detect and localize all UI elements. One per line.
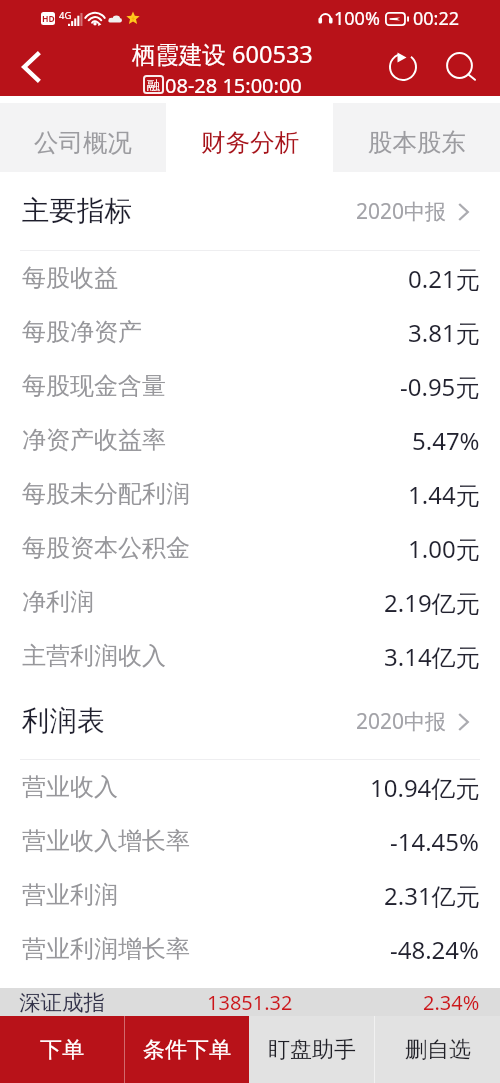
button[interactable]: 深证成指: [0, 988, 500, 1016]
button[interactable]: 每股资本公积金: [0, 521, 500, 575]
button[interactable]: 公司概况: [0, 103, 166, 172]
button[interactable]: Refresh: [380, 38, 426, 96]
staticText: 每股净资产: [22, 317, 142, 347]
button[interactable]: 营业利润: [0, 868, 500, 922]
staticText: 财务分析: [201, 127, 299, 158]
staticText: 08-28 15:00:00: [165, 72, 302, 96]
staticText: 公司概况: [34, 127, 132, 158]
button[interactable]: 营业收入: [0, 760, 500, 814]
button[interactable]: 股本股东: [333, 103, 500, 172]
button[interactable]: Back: [0, 38, 56, 96]
button[interactable]: 营业利润增长率: [0, 922, 500, 976]
staticText: 1.00元: [408, 532, 480, 565]
staticText: 营业收入增长率: [22, 826, 190, 856]
button[interactable]: 营业收入增长率: [0, 814, 500, 868]
staticText: 利润表: [22, 704, 105, 739]
staticText: 2.31亿元: [384, 879, 480, 912]
staticText: 3.81元: [408, 316, 480, 349]
button[interactable]: 净利润: [0, 575, 500, 629]
staticText: 0.21元: [408, 262, 480, 295]
button[interactable]: 利润表: [0, 683, 500, 759]
button[interactable]: 主营利润收入: [0, 629, 500, 683]
staticText: 2.19亿元: [384, 586, 480, 619]
staticText: 营业收入: [22, 772, 118, 802]
staticText: 每股现金含量: [22, 371, 166, 401]
button[interactable]: 财务分析: [166, 103, 333, 172]
staticText: 3.14亿元: [384, 640, 480, 673]
staticText: 13851.32: [207, 989, 293, 1016]
staticText: 盯盘助手: [268, 1036, 356, 1064]
staticText: -0.95元: [400, 370, 480, 403]
button[interactable]: 每股现金含量: [0, 359, 500, 413]
staticText: 2020中报: [356, 707, 447, 736]
button[interactable]: 条件下单: [125, 1016, 249, 1083]
staticText: 2.34%: [423, 989, 480, 1016]
staticText: 营业利润增长率: [22, 934, 190, 964]
button[interactable]: 净资产收益率: [0, 413, 500, 467]
staticText: 主要指标: [22, 194, 132, 229]
button[interactable]: 下单: [0, 1016, 124, 1083]
staticText: 净利润: [22, 587, 94, 617]
staticText: -48.24%: [390, 933, 480, 966]
button[interactable]: 每股收益: [0, 251, 500, 305]
staticText: 每股资本公积金: [22, 533, 190, 563]
staticText: HD: [42, 13, 55, 25]
staticText: 100%: [334, 6, 380, 31]
staticText: 营业利润: [22, 880, 118, 910]
staticText: 删自选: [405, 1036, 471, 1064]
button[interactable]: 盯盘助手: [249, 1016, 374, 1083]
staticText: 深证成指: [19, 989, 105, 1016]
button[interactable]: 主要指标: [0, 172, 500, 250]
staticText: -14.45%: [390, 825, 480, 858]
staticText: 栖霞建设 600533: [132, 38, 313, 70]
button[interactable]: 每股未分配利润: [0, 467, 500, 521]
staticText: 10.94亿元: [370, 771, 480, 804]
staticText: 下单: [40, 1036, 84, 1064]
staticText: 条件下单: [143, 1036, 231, 1064]
staticText: 2020中报: [356, 197, 447, 226]
staticText: 1.44元: [408, 478, 480, 511]
staticText: 00:22: [413, 6, 460, 31]
staticText: 融: [147, 77, 160, 93]
staticText: 净资产收益率: [22, 425, 166, 455]
button[interactable]: Search: [437, 38, 483, 96]
staticText: 股本股东: [368, 127, 466, 158]
staticText: 每股未分配利润: [22, 479, 190, 509]
staticText: 4G: [59, 9, 72, 22]
staticText: 主营利润收入: [22, 641, 166, 671]
button[interactable]: 每股净资产: [0, 305, 500, 359]
staticText: 5.47%: [412, 424, 480, 457]
staticText: 每股收益: [22, 263, 118, 293]
button[interactable]: 删自选: [375, 1016, 500, 1083]
